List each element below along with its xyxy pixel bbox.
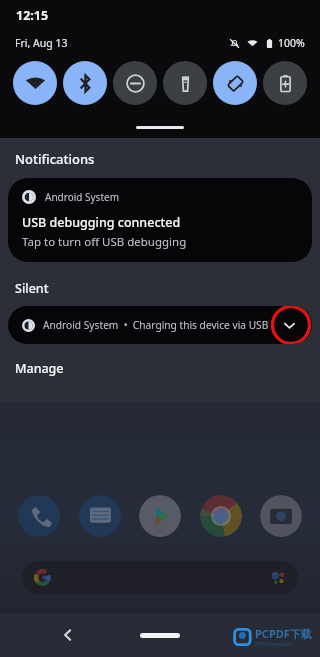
button[interactable]: Home [137, 628, 183, 642]
button[interactable]: Search [22, 561, 298, 594]
button[interactable]: Android System • Charging this device vi… [8, 306, 312, 344]
staticText: Manage [15, 360, 64, 377]
staticText: Fri, Aug 13 [15, 36, 68, 50]
button[interactable]: Auto-rotate [213, 61, 257, 105]
button[interactable]: Do Not Disturb [113, 61, 157, 105]
staticText: Tap to turn off USB debugging [22, 234, 187, 250]
staticText: USB debugging connected [22, 214, 181, 231]
button[interactable]: App [18, 495, 60, 537]
button[interactable]: Back [55, 622, 81, 648]
button[interactable]: Silent [15, 280, 320, 297]
staticText: 100% [278, 36, 305, 50]
button[interactable]: Battery Saver [263, 61, 307, 105]
button[interactable]: Wi-Fi [13, 61, 57, 105]
button[interactable]: Notifications [15, 150, 320, 168]
button[interactable]: App [139, 495, 181, 537]
button[interactable]: Flashlight [163, 61, 207, 105]
staticText: PCPDF下载 [255, 626, 312, 641]
button[interactable]: Expand quick settings [136, 126, 184, 129]
staticText: Silent [15, 280, 49, 297]
button[interactable]: Manage [15, 360, 320, 377]
staticText: PCPDF Download [255, 641, 292, 647]
button[interactable]: App [79, 495, 121, 537]
button[interactable]: App [200, 495, 242, 537]
staticText: 12:15 [16, 7, 49, 24]
button[interactable]: Bluetooth [63, 61, 107, 105]
button[interactable]: Expand notification [278, 314, 300, 336]
button[interactable]: Android System [8, 178, 312, 262]
staticText: Notifications [15, 150, 95, 168]
staticText: Android System [45, 190, 120, 204]
staticText: Android System • Charging this device vi… [43, 318, 269, 332]
button[interactable]: App [260, 495, 302, 537]
